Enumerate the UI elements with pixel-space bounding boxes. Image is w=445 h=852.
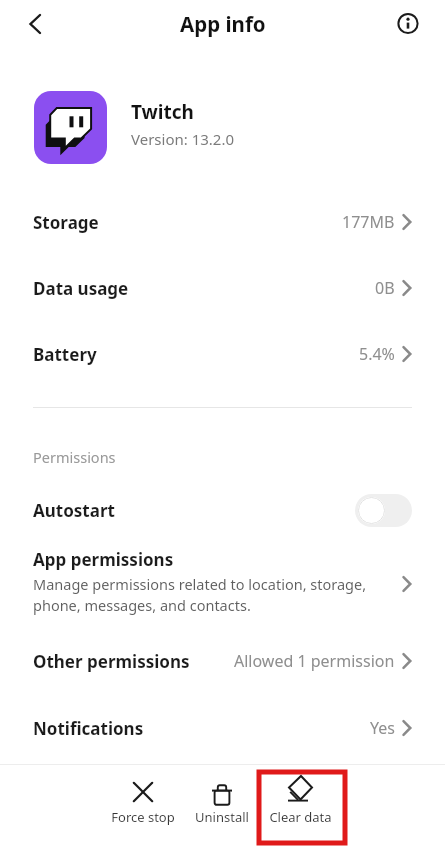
button[interactable]: Storage [0, 189, 445, 255]
staticText: Uninstall [195, 808, 249, 826]
button[interactable] [393, 8, 423, 38]
button[interactable]: Uninstall [180, 770, 264, 834]
button[interactable]: Notifications [0, 695, 445, 761]
staticText: Force stop [111, 808, 175, 826]
button[interactable]: Other permissions [0, 628, 445, 694]
staticText: Other permissions [33, 650, 190, 673]
staticText: 0B [375, 277, 395, 299]
staticText: Manage permissions related to location, … [33, 574, 367, 615]
staticText: Twitch [131, 99, 194, 125]
staticText: App permissions [33, 548, 174, 571]
button[interactable]: Data usage [0, 255, 445, 321]
button[interactable]: App permissions [0, 540, 445, 628]
staticText: Allowed 1 permission [234, 650, 395, 672]
staticText: 177MB [342, 211, 395, 233]
staticText: 5.4% [359, 343, 395, 365]
staticText: Battery [33, 343, 97, 366]
staticText: Permissions [33, 447, 116, 467]
button[interactable] [20, 9, 50, 39]
staticText: Storage [33, 211, 99, 234]
staticText: Version: 13.2.0 [131, 129, 235, 149]
staticText: Clear data [269, 808, 332, 826]
staticText: Autostart [33, 499, 115, 522]
staticText: Yes [370, 717, 395, 739]
button[interactable]: Force stop [101, 770, 185, 834]
button[interactable]: Clear data [258, 770, 342, 834]
staticText: Data usage [33, 277, 129, 300]
staticText: Notifications [33, 717, 144, 740]
button[interactable]: Autostart [0, 483, 445, 537]
button[interactable]: Battery [0, 321, 445, 387]
staticText: App info [180, 10, 266, 38]
